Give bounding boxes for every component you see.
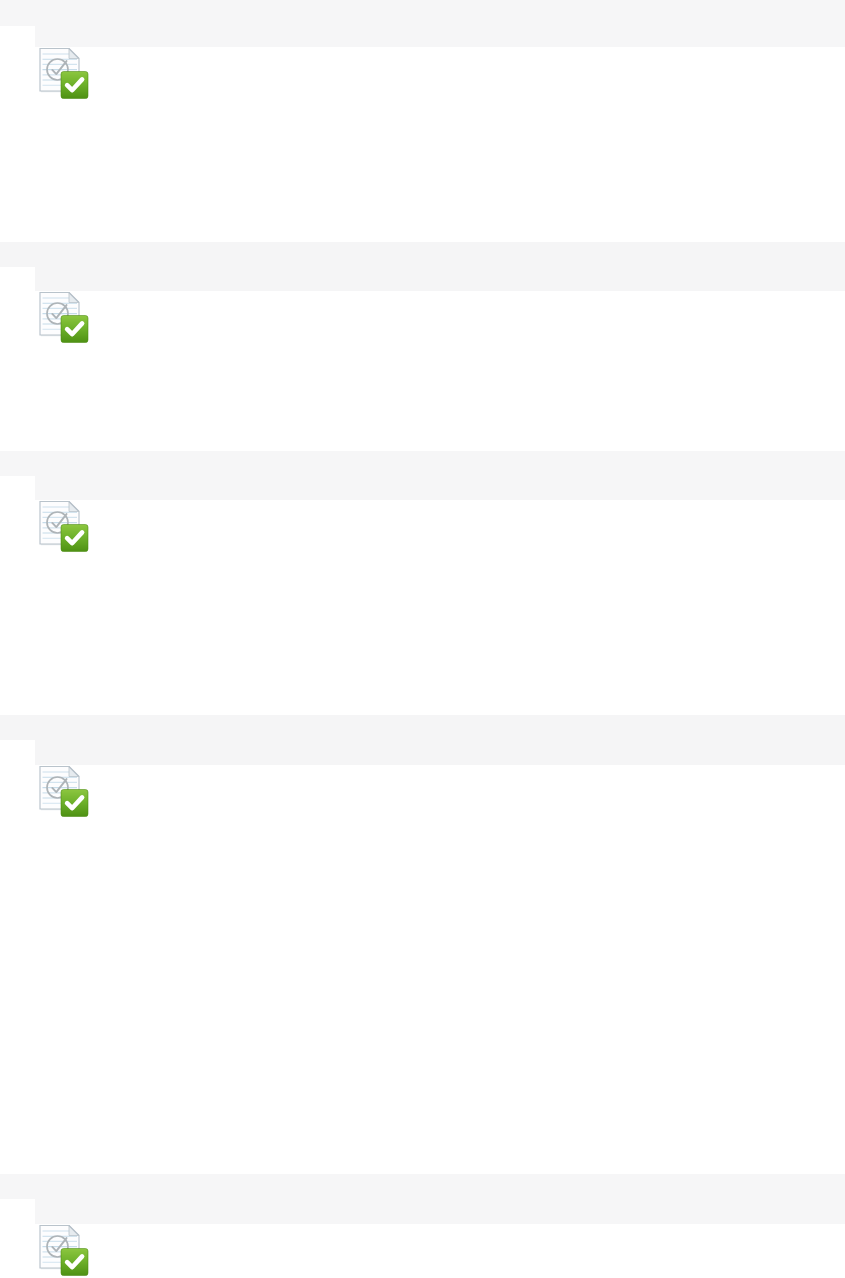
button[interactable]: Completed document <box>38 47 90 99</box>
button[interactable]: Completed document <box>38 765 90 817</box>
button[interactable]: Completed document <box>38 1224 90 1276</box>
button[interactable]: Completed document <box>38 291 90 343</box>
button[interactable]: Completed document <box>38 500 90 552</box>
